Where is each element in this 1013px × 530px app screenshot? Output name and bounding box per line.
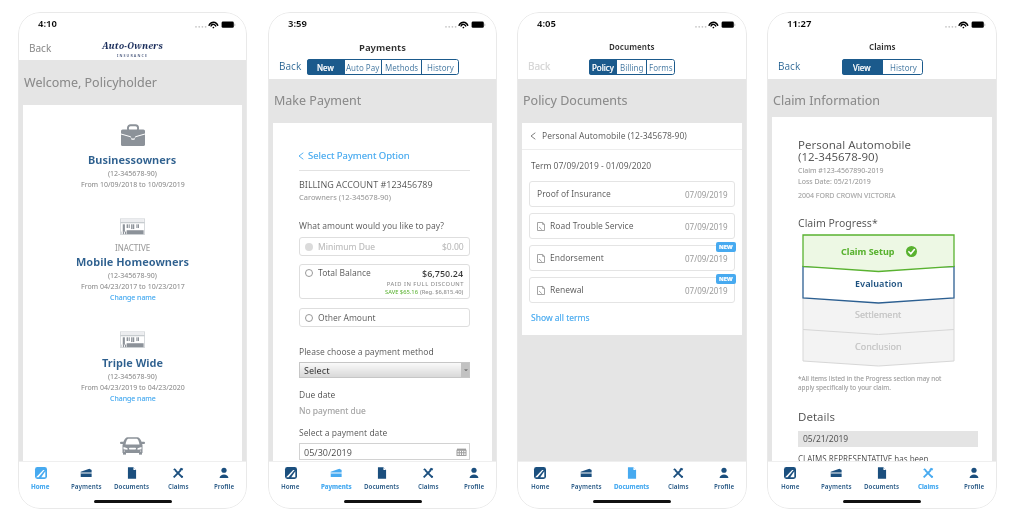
button[interactable]: Conclusion (803, 338, 954, 354)
staticText: Payments (359, 41, 407, 54)
button[interactable]: Minimum Due (299, 237, 470, 256)
button[interactable]: Claims (405, 467, 451, 497)
staticText: $6,750.24 (422, 267, 464, 279)
staticText: Claims (168, 482, 189, 490)
button[interactable]: Home (767, 467, 813, 497)
staticText: Personal Automobile (12-345678-90) (798, 137, 911, 164)
button[interactable]: View (842, 59, 882, 75)
button[interactable]: Back (29, 41, 52, 55)
staticText: Claims (668, 482, 689, 490)
staticText: Minimum Due (318, 241, 375, 253)
staticText: Claim #123-4567890-2019 Loss Date: 05/21… (798, 166, 884, 186)
staticText: PAID IN FULL DISCOUNT (305, 280, 464, 288)
staticText: Documents (364, 482, 400, 490)
staticText: Claims (418, 482, 439, 490)
button[interactable]: Payments (563, 467, 609, 497)
staticText: Welcome, Policyholder (24, 74, 157, 91)
other: Profile (718, 467, 730, 479)
button[interactable]: Claims (655, 467, 701, 497)
button[interactable]: Select (299, 362, 470, 378)
staticText: Renewal (550, 284, 584, 296)
staticText: BILLING ACCOUNT #123456789 (299, 178, 433, 190)
button[interactable]: Profile (951, 467, 997, 497)
staticText: Businessowners (88, 152, 177, 167)
staticText: What amount would you like to pay? (299, 220, 445, 232)
button[interactable]: Forms (647, 59, 675, 75)
button[interactable]: Claims (905, 467, 951, 497)
button[interactable]: Methods (382, 59, 421, 75)
button[interactable]: Select Payment Option (299, 149, 410, 162)
button[interactable]: Renewal (529, 277, 735, 303)
button[interactable]: Payments (813, 467, 859, 497)
button[interactable]: Home (517, 467, 563, 497)
button[interactable]: Evaluation (803, 275, 954, 291)
staticText: Payments (821, 482, 852, 490)
button[interactable]: Profile (201, 467, 247, 497)
button[interactable]: Other Amount (299, 308, 470, 327)
button[interactable]: 05/30/2019 (299, 443, 470, 460)
button[interactable]: Back (279, 59, 302, 73)
button[interactable]: Documents (109, 467, 155, 497)
staticText: Other Amount (318, 312, 376, 324)
staticText: 4:05 (537, 17, 556, 30)
staticText: Profile (464, 482, 485, 490)
button[interactable]: Payments (63, 467, 109, 497)
button[interactable]: Home (268, 467, 313, 497)
button[interactable]: Profile (701, 467, 747, 497)
staticText: NEW (719, 243, 733, 251)
staticText: 07/09/2019 (685, 221, 728, 232)
button[interactable]: Road Trouble Service (529, 213, 735, 239)
button[interactable]: Change name (110, 293, 156, 303)
staticText: Forms (649, 62, 673, 73)
staticText: 05/21/2019 (803, 433, 849, 445)
button[interactable]: Total Balance (299, 264, 470, 299)
staticText: Policy Documents (523, 92, 628, 109)
button[interactable]: Back (778, 59, 801, 73)
staticText: NEW (719, 275, 733, 283)
staticText: 11:27 (787, 17, 812, 30)
staticText: Conclusion (855, 340, 902, 352)
other: Payments (580, 467, 592, 479)
button[interactable]: Show all terms (531, 312, 590, 324)
staticText: SAVE $65.16 (385, 288, 420, 296)
staticText: Auto Pay (346, 62, 380, 73)
button[interactable]: Billing (617, 59, 646, 75)
other: Home (35, 467, 47, 479)
button[interactable]: Auto Pay (345, 59, 381, 75)
staticText: 2004 FORD CROWN VICTORIA (798, 191, 896, 201)
staticText: Evaluation (855, 277, 903, 289)
staticText: (12-345678-90) (108, 372, 157, 382)
staticText: Methods (385, 62, 419, 73)
staticText: $0.00 (442, 241, 464, 253)
button[interactable]: Claim Setup (803, 243, 954, 259)
button[interactable]: Home (18, 467, 63, 497)
staticText: Claim Information (773, 92, 881, 109)
staticText: Profile (214, 482, 235, 490)
button[interactable]: Back (528, 59, 551, 73)
button[interactable]: Documents (859, 467, 905, 497)
staticText: 07/09/2019 (685, 189, 728, 200)
button[interactable]: Payments (313, 467, 359, 497)
staticText: Please choose a payment method (299, 346, 434, 358)
staticText: Claim Progress* (798, 216, 878, 230)
other: Home (285, 467, 297, 479)
button[interactable]: Change name (110, 394, 156, 404)
other: Payments (80, 467, 92, 479)
button[interactable]: Proof of Insurance (529, 181, 735, 207)
staticText: (Reg. $6,815.40) (420, 288, 464, 296)
staticText: History (890, 62, 917, 73)
button[interactable]: Settlement (803, 306, 954, 322)
button[interactable]: History (883, 59, 923, 75)
button[interactable]: Documents (609, 467, 655, 497)
staticText: Home (781, 482, 800, 490)
button[interactable]: New (307, 59, 344, 75)
button[interactable]: Documents (359, 467, 405, 497)
button[interactable]: Policy (589, 59, 616, 75)
button[interactable]: History (422, 59, 459, 75)
button[interactable]: Claims (155, 467, 201, 497)
staticText: Claims (918, 482, 939, 490)
button[interactable]: Endorsement (529, 245, 735, 271)
button[interactable]: Personal Automobile (12-345678-90) (522, 123, 742, 149)
other: Documents (376, 467, 388, 479)
button[interactable]: Profile (451, 467, 497, 497)
